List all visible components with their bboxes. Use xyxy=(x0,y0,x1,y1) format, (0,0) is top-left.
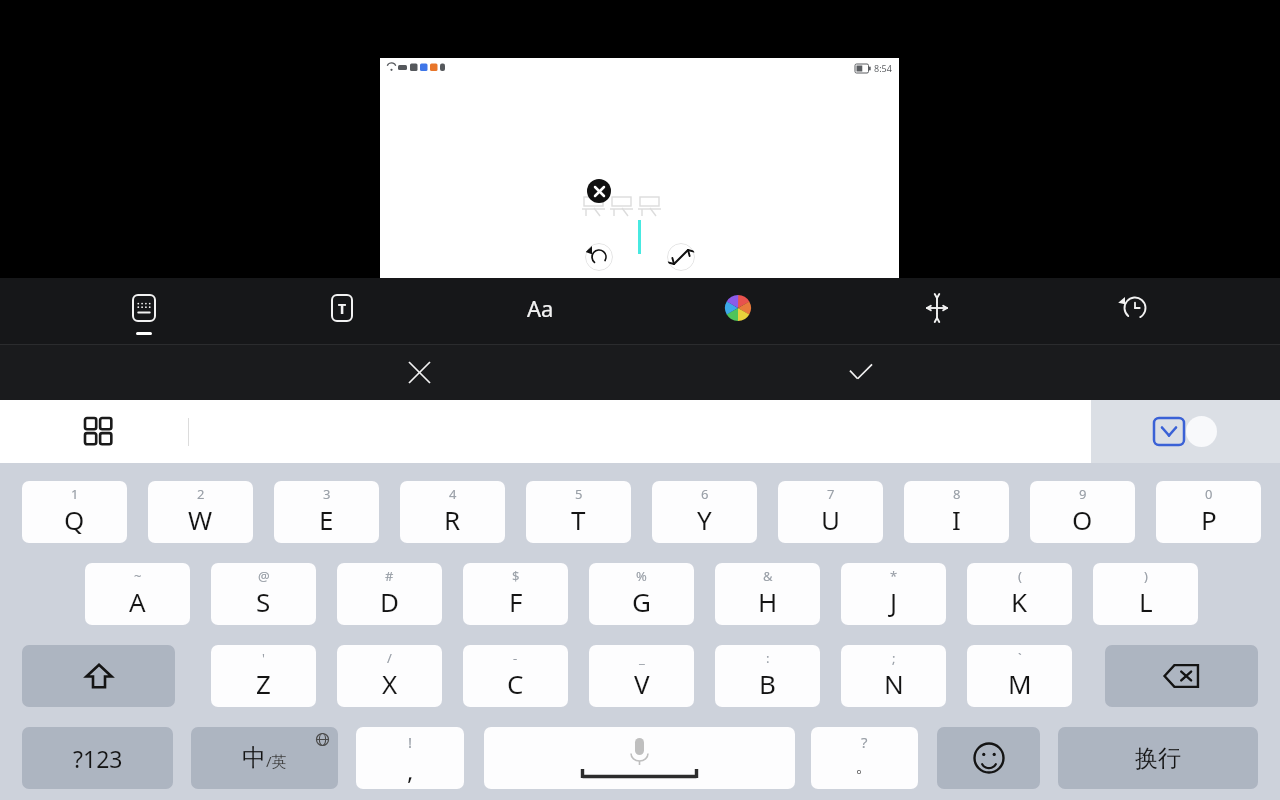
staticText: Aa xyxy=(527,293,554,323)
staticText: ! xyxy=(408,732,413,752)
button[interactable]: ' xyxy=(211,645,316,707)
button[interactable]: & xyxy=(715,563,820,625)
staticText: F xyxy=(509,584,523,619)
staticText: @ xyxy=(258,567,270,585)
button[interactable]: ( xyxy=(967,563,1072,625)
button[interactable]: Comma xyxy=(356,727,464,789)
button[interactable]: 8 xyxy=(904,481,1009,543)
staticText: ~ xyxy=(134,567,142,585)
button[interactable]: 0 xyxy=(1156,481,1261,543)
staticText: 2 xyxy=(197,485,205,503)
button[interactable]: Keyboard xyxy=(104,278,184,344)
button[interactable]: 5 xyxy=(526,481,631,543)
staticText: P xyxy=(1201,502,1217,537)
staticText: N xyxy=(884,666,904,701)
staticText: 1 xyxy=(71,485,79,503)
button[interactable]: # xyxy=(337,563,442,625)
button[interactable]: Symbols xyxy=(22,727,173,789)
button[interactable]: Text color xyxy=(698,278,778,344)
button[interactable]: - xyxy=(463,645,568,707)
staticText: G xyxy=(632,584,651,619)
button[interactable]: Cancel xyxy=(395,345,443,400)
staticText: B xyxy=(759,666,776,701)
button[interactable]: 3 xyxy=(274,481,379,543)
button[interactable]: Enter xyxy=(1058,727,1258,789)
staticText: W xyxy=(188,502,213,537)
staticText: E xyxy=(319,502,334,537)
button[interactable]: Keyboard menu xyxy=(76,400,122,463)
button[interactable]: : xyxy=(715,645,820,707)
staticText: Q xyxy=(64,502,85,537)
staticText: 换行 xyxy=(1135,744,1181,773)
staticText: & xyxy=(763,567,773,585)
staticText: H xyxy=(758,584,778,619)
staticText: T xyxy=(338,299,347,318)
staticText: % xyxy=(636,567,647,585)
staticText: 。 xyxy=(855,754,874,778)
staticText: ' xyxy=(262,649,265,667)
button[interactable]: 4 xyxy=(400,481,505,543)
button[interactable]: % xyxy=(589,563,694,625)
button[interactable]: Period xyxy=(811,727,918,789)
staticText: 中 xyxy=(242,743,266,773)
staticText: D xyxy=(380,584,399,619)
button[interactable]: Move xyxy=(897,278,977,344)
staticText: V xyxy=(634,666,650,701)
staticText: M xyxy=(1008,666,1032,701)
button[interactable]: Emoji xyxy=(937,727,1040,789)
button[interactable]: ; xyxy=(841,645,946,707)
button[interactable]: ` xyxy=(967,645,1072,707)
button[interactable]: Resize xyxy=(667,243,695,271)
staticText: C xyxy=(507,666,524,701)
button[interactable]: @ xyxy=(211,563,316,625)
button[interactable]: Shift xyxy=(22,645,175,707)
button[interactable]: ~ xyxy=(85,563,190,625)
staticText: O xyxy=(1072,502,1093,537)
staticText: 7 xyxy=(827,485,835,503)
staticText: X xyxy=(382,666,398,701)
button[interactable]: Switch language xyxy=(191,727,338,789)
button[interactable]: Text box xyxy=(302,278,382,344)
staticText: 8 xyxy=(953,485,961,503)
staticText: ( xyxy=(1018,567,1022,585)
staticText: L xyxy=(1139,584,1153,619)
staticText: ? xyxy=(861,732,868,752)
button[interactable]: 9 xyxy=(1030,481,1135,543)
button[interactable]: Backspace xyxy=(1105,645,1258,707)
staticText: 0 xyxy=(1205,485,1213,503)
button[interactable]: History xyxy=(1095,278,1175,344)
button[interactable]: 2 xyxy=(148,481,253,543)
button[interactable]: Confirm xyxy=(837,345,885,400)
staticText: 6 xyxy=(701,485,709,503)
staticText: 3 xyxy=(323,485,331,503)
staticText: J xyxy=(890,584,898,619)
button[interactable]: Hide keyboard xyxy=(1091,400,1280,463)
button[interactable]: 7 xyxy=(778,481,883,543)
staticText: _ xyxy=(639,649,645,667)
button[interactable]: Rotate xyxy=(585,243,613,271)
staticText: 9 xyxy=(1079,485,1087,503)
button[interactable]: / xyxy=(337,645,442,707)
button[interactable]: Delete text xyxy=(587,179,611,203)
button[interactable]: ) xyxy=(1093,563,1198,625)
staticText: ` xyxy=(1018,649,1022,667)
staticText: Z xyxy=(256,666,271,701)
staticText: 5 xyxy=(575,485,583,503)
button[interactable]: * xyxy=(841,563,946,625)
staticText: ; xyxy=(892,649,896,667)
staticText: ?123 xyxy=(73,743,123,774)
staticText: K xyxy=(1011,584,1028,619)
staticText: A xyxy=(129,584,146,619)
button[interactable]: _ xyxy=(589,645,694,707)
button[interactable]: Font size xyxy=(500,278,580,344)
button[interactable]: $ xyxy=(463,563,568,625)
staticText: # xyxy=(385,567,394,585)
staticText: 8:54 xyxy=(874,62,892,74)
button[interactable]: Space xyxy=(484,727,795,789)
staticText: / xyxy=(387,649,392,667)
staticText: ) xyxy=(1144,567,1148,585)
staticText: U xyxy=(821,502,841,537)
button[interactable]: 6 xyxy=(652,481,757,543)
button[interactable]: 1 xyxy=(22,481,127,543)
staticText: I xyxy=(952,502,961,537)
